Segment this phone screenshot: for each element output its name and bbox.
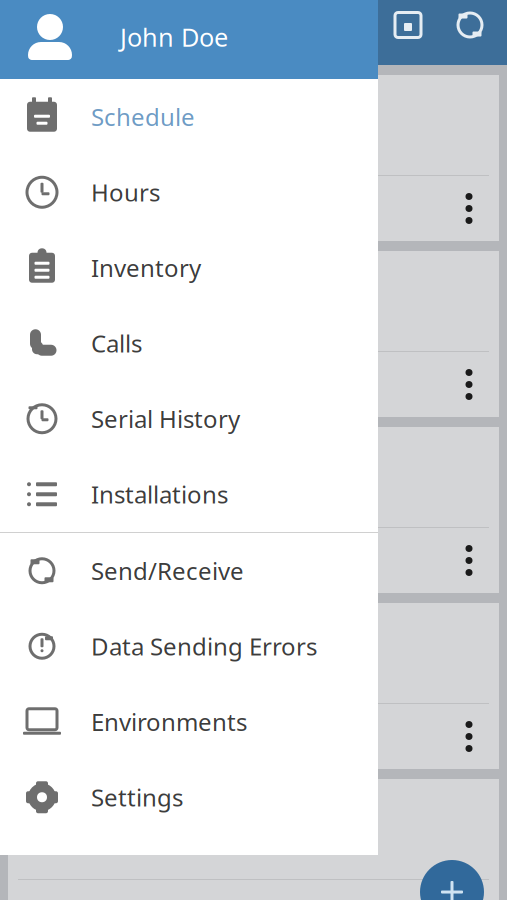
button[interactable]: More options bbox=[447, 706, 491, 766]
staticText: Settings bbox=[91, 781, 183, 813]
button[interactable]: Calendar bbox=[391, 8, 425, 42]
staticText: Accepted bbox=[32, 266, 130, 296]
staticText: Send/Receive bbox=[91, 555, 244, 587]
button[interactable]: Serial History bbox=[0, 381, 378, 456]
staticText: Calls bbox=[91, 327, 142, 359]
staticText: Accepted bbox=[32, 794, 130, 824]
staticText: Hours bbox=[91, 176, 160, 208]
staticText: Completed bbox=[32, 618, 149, 648]
button[interactable]: Data Sending Errors bbox=[0, 608, 378, 684]
button[interactable]: More options bbox=[447, 882, 491, 900]
button[interactable]: Calls bbox=[0, 305, 378, 381]
button[interactable]: More options bbox=[447, 530, 491, 590]
staticText: Installations bbox=[91, 478, 228, 510]
button[interactable]: Hours bbox=[0, 154, 378, 230]
button[interactable]: Send/Receive bbox=[0, 533, 378, 608]
button[interactable]: Sync bbox=[453, 8, 487, 42]
button[interactable]: More options bbox=[447, 178, 491, 238]
staticText: Schedule bbox=[91, 101, 195, 133]
staticText: Inventory bbox=[91, 252, 201, 284]
button[interactable]: Installations bbox=[0, 456, 378, 532]
button[interactable]: More options bbox=[447, 354, 491, 414]
button[interactable]: Add job bbox=[420, 860, 484, 900]
button[interactable]: Schedule bbox=[0, 79, 378, 154]
staticText: Data Sending Errors bbox=[91, 630, 317, 662]
button[interactable]: Inventory bbox=[0, 230, 378, 305]
button[interactable]: Environments bbox=[0, 684, 378, 759]
staticText: Serial History bbox=[91, 403, 240, 435]
staticText: Environments bbox=[91, 706, 247, 738]
button[interactable]: Settings bbox=[0, 759, 378, 835]
staticText: John Doe bbox=[120, 20, 228, 54]
